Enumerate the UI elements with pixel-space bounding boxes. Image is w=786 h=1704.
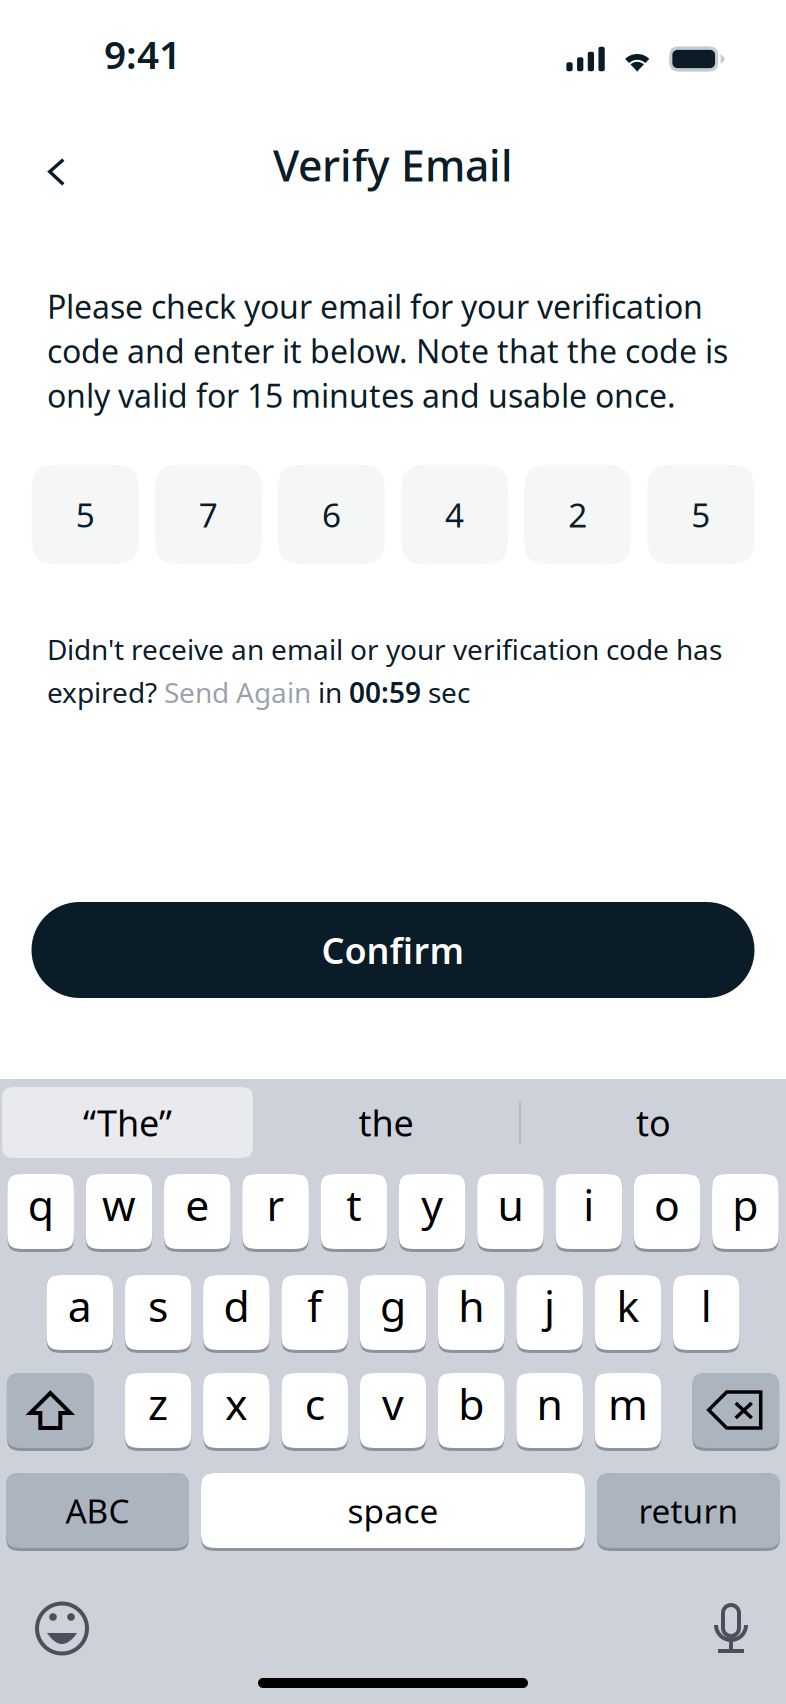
button[interactable]: n xyxy=(516,1373,583,1451)
staticText: “The” xyxy=(83,1099,172,1146)
staticText: Didn't receive an email or your verifica… xyxy=(47,630,722,711)
staticText: h xyxy=(458,1277,484,1334)
button[interactable]: Back xyxy=(22,124,91,196)
staticText: z xyxy=(148,1375,168,1432)
staticText: v xyxy=(382,1375,404,1432)
staticText: w xyxy=(102,1176,136,1233)
staticText: q xyxy=(28,1176,54,1233)
staticText: d xyxy=(223,1277,249,1334)
staticText: b xyxy=(458,1375,484,1432)
button[interactable]: to xyxy=(521,1087,786,1158)
staticText: y xyxy=(421,1176,443,1233)
staticText: 5 xyxy=(691,492,710,537)
staticText: f xyxy=(307,1277,322,1334)
staticText: return xyxy=(638,1488,738,1533)
staticText: p xyxy=(732,1176,758,1233)
staticText: to xyxy=(636,1099,671,1146)
button[interactable]: q xyxy=(7,1174,74,1252)
button[interactable]: g xyxy=(360,1275,426,1353)
staticText: 9:41 xyxy=(104,28,181,80)
button[interactable]: k xyxy=(595,1275,661,1353)
staticText: ABC xyxy=(65,1488,129,1533)
staticText: n xyxy=(537,1375,563,1432)
staticText: x xyxy=(225,1375,248,1432)
button[interactable]: b xyxy=(438,1373,505,1451)
staticText: e xyxy=(185,1176,209,1233)
button[interactable]: o xyxy=(634,1174,700,1252)
button[interactable]: x xyxy=(203,1373,270,1451)
staticText: k xyxy=(616,1277,639,1334)
button[interactable]: Confirm xyxy=(31,902,754,998)
staticText: u xyxy=(497,1176,523,1233)
button[interactable]: e xyxy=(164,1174,230,1252)
button[interactable]: u xyxy=(477,1174,544,1252)
button[interactable]: a xyxy=(46,1275,113,1353)
button[interactable]: v xyxy=(360,1373,426,1451)
staticText: 7 xyxy=(199,492,218,537)
button[interactable]: c xyxy=(281,1373,348,1451)
button[interactable]: f xyxy=(281,1275,348,1353)
staticText: j xyxy=(544,1277,555,1334)
button[interactable]: t xyxy=(320,1174,387,1252)
button[interactable]: y xyxy=(399,1174,465,1252)
button[interactable]: “The” xyxy=(2,1087,253,1158)
button[interactable]: Shift xyxy=(7,1373,94,1451)
staticText: s xyxy=(148,1277,168,1334)
button[interactable]: ABC xyxy=(6,1473,189,1551)
button[interactable]: d xyxy=(203,1275,270,1353)
staticText: c xyxy=(305,1375,325,1432)
button[interactable]: r xyxy=(242,1174,309,1252)
staticText: m xyxy=(608,1375,648,1432)
button[interactable]: h xyxy=(438,1275,505,1353)
button[interactable]: m xyxy=(595,1373,661,1451)
button[interactable]: s xyxy=(125,1275,191,1353)
staticText: 5 xyxy=(76,492,95,537)
staticText: Verify Email xyxy=(273,137,513,193)
staticText: the xyxy=(358,1099,413,1146)
staticText: a xyxy=(68,1277,92,1334)
staticText: g xyxy=(380,1277,406,1334)
staticText: 6 xyxy=(322,492,341,537)
staticText: 2 xyxy=(568,492,587,537)
staticText: i xyxy=(583,1176,594,1233)
staticText: space xyxy=(347,1488,438,1533)
button[interactable]: Dictate xyxy=(698,1588,764,1669)
staticText: o xyxy=(654,1176,680,1233)
staticText: Confirm xyxy=(321,926,464,974)
button[interactable]: the xyxy=(253,1087,519,1158)
button[interactable]: z xyxy=(125,1373,191,1451)
staticText: Please check your email for your verific… xyxy=(47,285,728,416)
staticText: 4 xyxy=(445,492,464,537)
staticText: l xyxy=(701,1277,712,1334)
button[interactable]: return xyxy=(597,1473,780,1551)
button[interactable]: Delete xyxy=(692,1373,779,1451)
staticText: t xyxy=(346,1176,361,1233)
button[interactable]: w xyxy=(86,1174,152,1252)
button[interactable]: Emoji keyboard xyxy=(22,1588,102,1668)
button[interactable]: l xyxy=(673,1275,739,1353)
staticText: r xyxy=(266,1176,284,1233)
button[interactable]: j xyxy=(516,1275,583,1353)
button[interactable]: i xyxy=(555,1174,622,1252)
button[interactable]: p xyxy=(712,1174,779,1252)
button[interactable]: space xyxy=(201,1473,585,1551)
